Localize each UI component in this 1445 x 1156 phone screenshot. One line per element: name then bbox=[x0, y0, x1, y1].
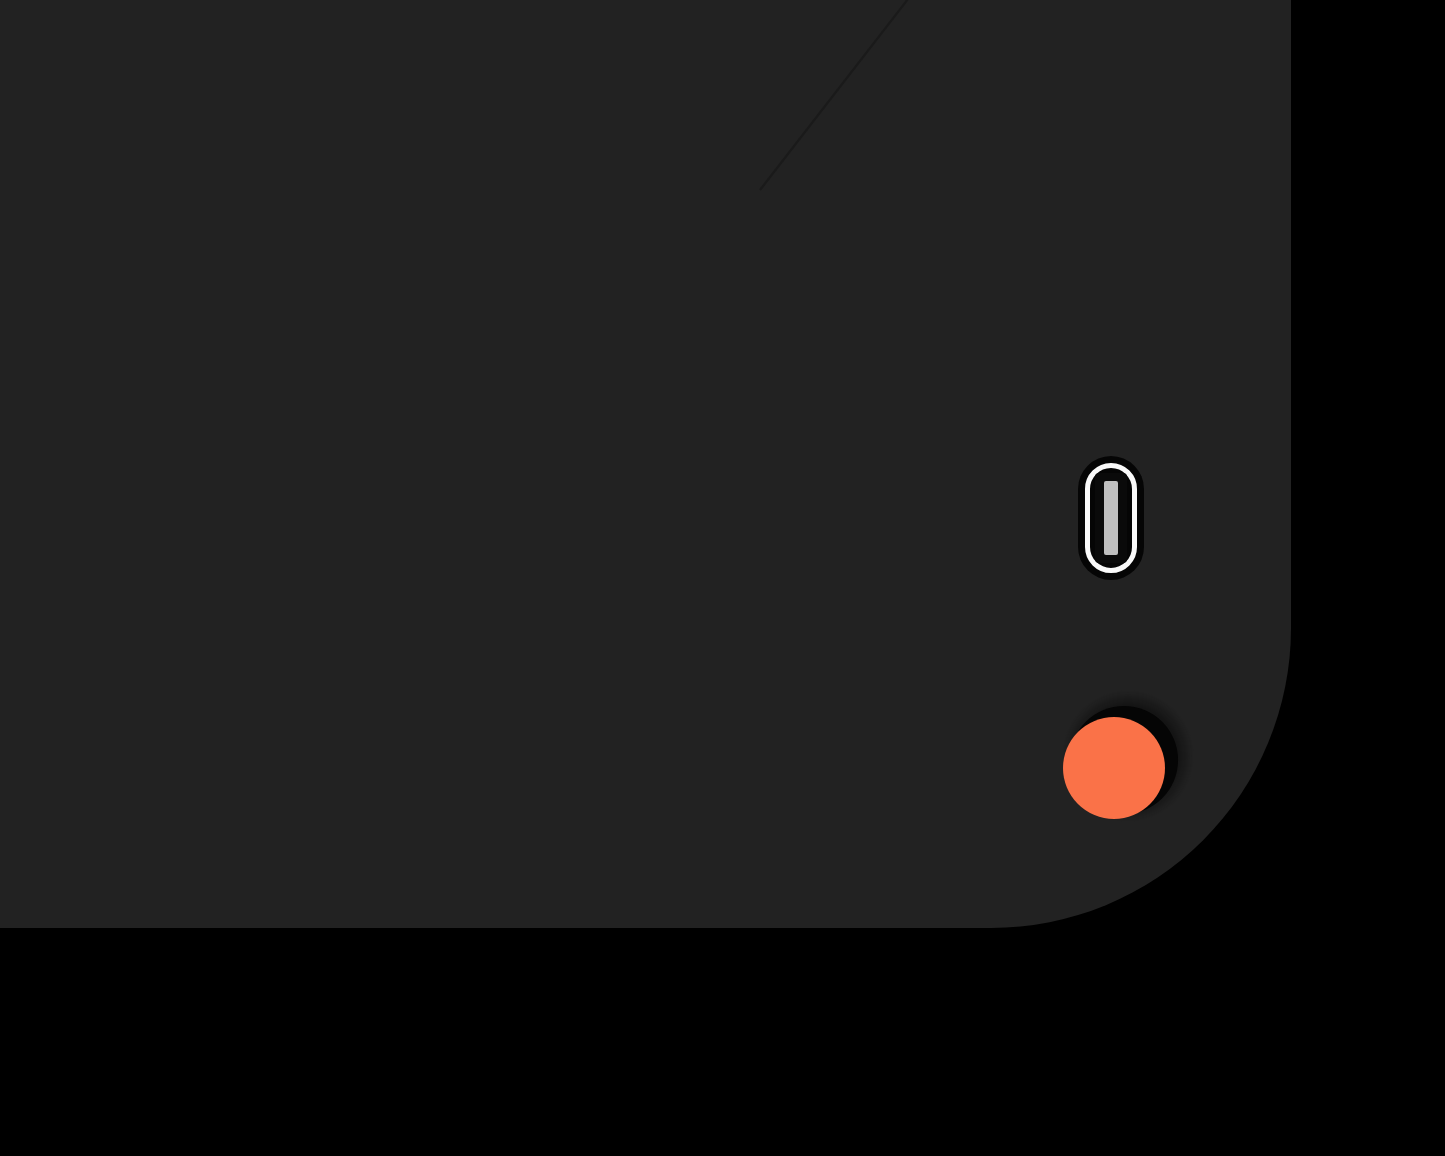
button[interactable]: Add bbox=[1063, 717, 1165, 819]
button[interactable]: Scroll position indicator bbox=[1078, 456, 1144, 580]
